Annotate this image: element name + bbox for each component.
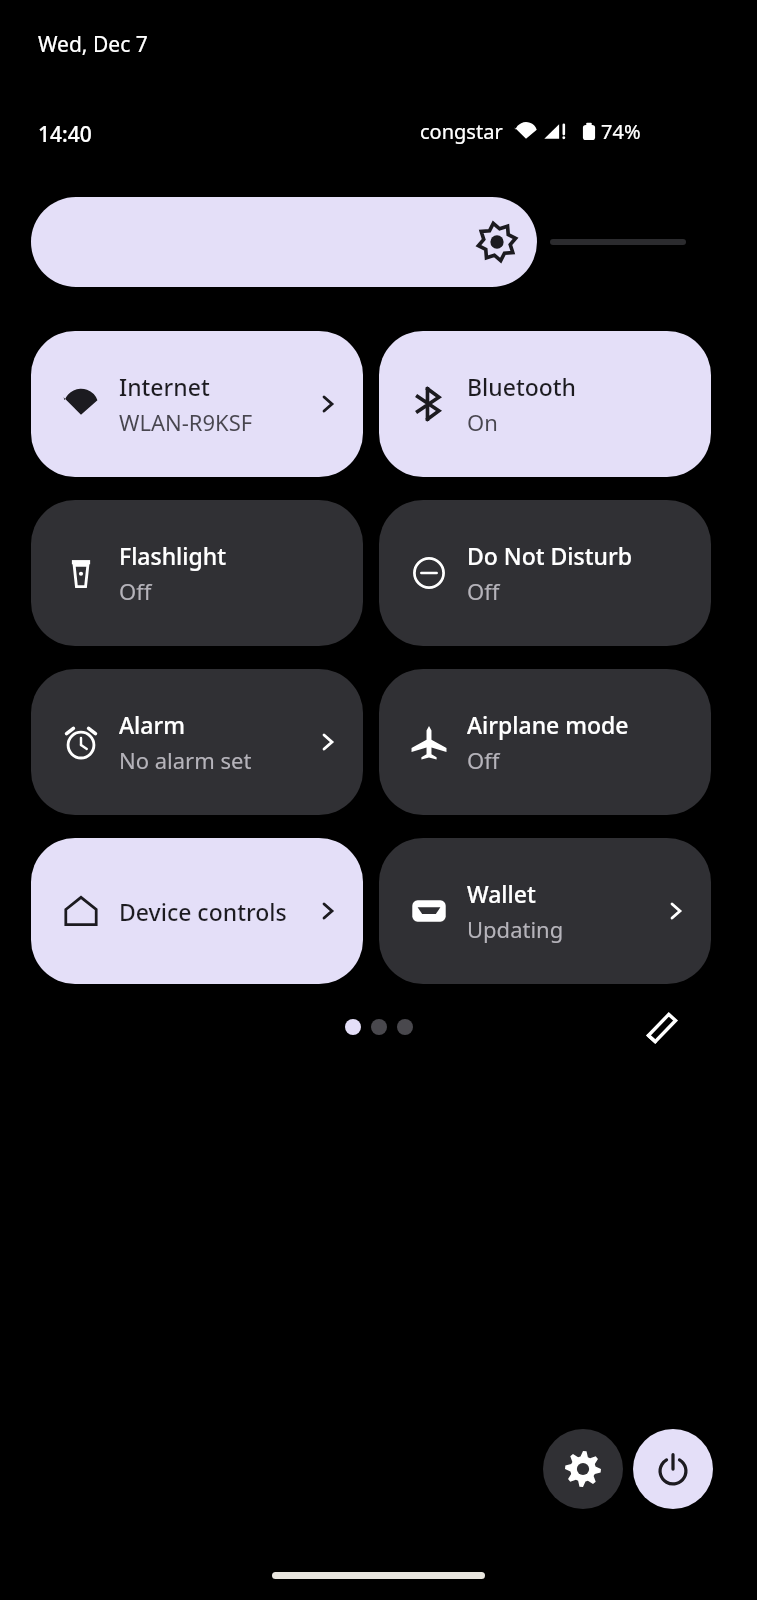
staticText: Off xyxy=(467,745,500,775)
button[interactable]: Brightness xyxy=(31,197,537,287)
staticText: Bluetooth xyxy=(467,371,577,402)
staticText: Alarm xyxy=(119,709,185,740)
button[interactable]: Bluetooth xyxy=(379,331,711,477)
button[interactable]: Alarm xyxy=(31,669,363,815)
staticText: Flashlight xyxy=(119,540,227,571)
button[interactable]: Settings xyxy=(543,1429,623,1509)
staticText: No alarm set xyxy=(119,745,252,775)
staticText: Off xyxy=(119,576,152,606)
staticText: Internet xyxy=(119,371,210,402)
button[interactable]: Internet xyxy=(31,331,363,477)
button[interactable]: Edit tiles xyxy=(634,1000,690,1056)
staticText: Device controls xyxy=(119,896,287,927)
staticText: Updating xyxy=(467,914,564,944)
staticText: 74% xyxy=(601,118,641,145)
staticText: Airplane mode xyxy=(467,709,629,740)
staticText: On xyxy=(467,407,498,437)
button[interactable]: Power xyxy=(633,1429,713,1509)
staticText: 14:40 xyxy=(38,120,92,149)
staticText: Wallet xyxy=(467,878,536,909)
button[interactable]: Flashlight xyxy=(31,500,363,646)
button[interactable]: Airplane mode xyxy=(379,669,711,815)
button[interactable]: Device controls xyxy=(31,838,363,984)
staticText: Do Not Disturb xyxy=(467,540,632,571)
staticText: congstar xyxy=(420,118,503,145)
staticText: WLAN-R9KSF xyxy=(119,407,253,437)
staticText: Wed, Dec 7 xyxy=(38,30,148,59)
staticText: Off xyxy=(467,576,500,606)
button[interactable]: Wallet xyxy=(379,838,711,984)
button[interactable]: Do Not Disturb xyxy=(379,500,711,646)
